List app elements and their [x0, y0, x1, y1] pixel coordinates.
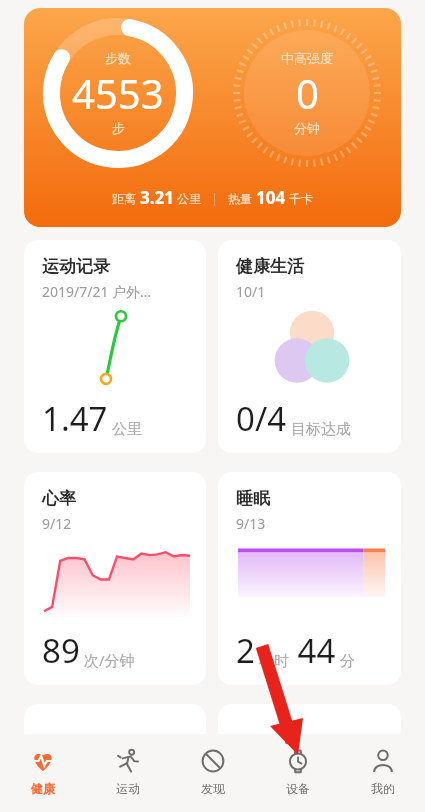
- staticText: 2019/7/21 户外…: [42, 282, 152, 301]
- staticText: 公里: [108, 418, 142, 438]
- staticText: 小时: [255, 650, 289, 670]
- staticText: 距离: [112, 190, 140, 206]
- staticText: 设备: [286, 781, 310, 796]
- button[interactable]: 健康: [0, 734, 85, 812]
- staticText: 9/12: [42, 514, 72, 533]
- button[interactable]: 睡眠: [218, 472, 401, 685]
- staticText: 104: [256, 186, 286, 209]
- button[interactable]: 步数: [24, 8, 401, 227]
- button[interactable]: 运动: [85, 734, 170, 812]
- staticText: 中高强度: [281, 50, 333, 66]
- staticText: 44: [289, 628, 336, 673]
- staticText: 发现: [201, 781, 225, 796]
- staticText: 健康生活: [236, 256, 304, 277]
- staticText: 睡眠: [236, 488, 270, 509]
- staticText: 千卡: [286, 190, 314, 206]
- staticText: |: [202, 190, 228, 206]
- staticText: 4553: [72, 66, 164, 120]
- button[interactable]: [218, 704, 401, 744]
- staticText: 步数: [105, 50, 131, 66]
- staticText: 运动: [116, 781, 140, 796]
- staticText: 健康: [31, 781, 55, 796]
- staticText: 10/1: [236, 282, 266, 301]
- button[interactable]: 健康生活: [218, 240, 401, 453]
- staticText: 次/分钟: [80, 650, 135, 670]
- staticText: 0/4: [236, 396, 287, 441]
- staticText: 分: [336, 650, 355, 670]
- staticText: 目标达成: [287, 418, 351, 438]
- button[interactable]: 发现: [170, 734, 255, 812]
- staticText: 2: [236, 628, 255, 673]
- button[interactable]: 设备: [255, 734, 340, 812]
- staticText: 分钟: [294, 120, 320, 136]
- staticText: 1.47: [42, 396, 108, 441]
- staticText: 0: [296, 66, 319, 120]
- staticText: 3.21: [140, 186, 174, 209]
- button[interactable]: 运动记录: [24, 240, 206, 453]
- button[interactable]: 我的: [340, 734, 425, 812]
- staticText: 89: [42, 628, 80, 673]
- staticText: 运动记录: [42, 256, 110, 277]
- staticText: 步: [112, 120, 125, 136]
- staticText: 我的: [371, 781, 395, 796]
- staticText: 心率: [42, 488, 76, 509]
- button[interactable]: [24, 704, 206, 744]
- button[interactable]: 心率: [24, 472, 206, 685]
- staticText: 公里: [174, 190, 202, 206]
- staticText: 热量: [228, 190, 256, 206]
- staticText: 9/13: [236, 514, 266, 533]
